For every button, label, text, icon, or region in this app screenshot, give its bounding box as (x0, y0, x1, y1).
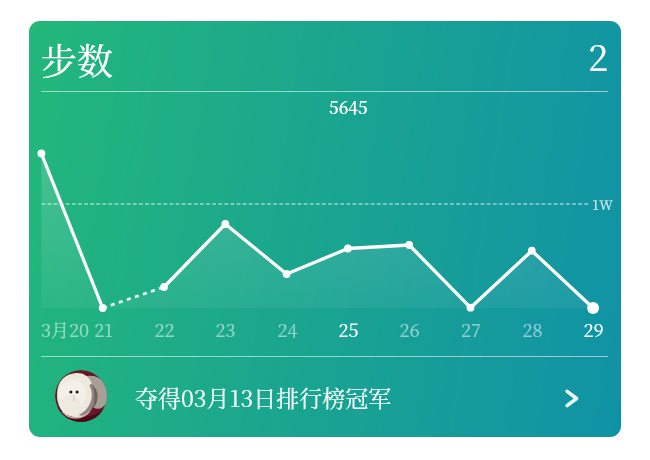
staticText: 22 (154, 316, 175, 342)
staticText: 3月20 (41, 316, 90, 342)
staticText: 26 (399, 316, 420, 342)
staticText: 2 (41, 30, 608, 82)
staticText: 5645 (329, 94, 368, 118)
staticText: 28 (522, 316, 543, 342)
staticText: 1W (592, 195, 613, 214)
staticText: 27 (461, 316, 481, 342)
button[interactable]: 夺得03月13日排行榜冠军 (29, 357, 621, 437)
staticText: 21 (94, 316, 113, 342)
staticText: 夺得03月13日排行榜冠军 (135, 381, 392, 414)
other: 查看详情 (548, 376, 592, 420)
staticText: 25 (338, 316, 359, 342)
staticText: 29 (583, 316, 604, 342)
staticText: 步数 (41, 34, 114, 86)
staticText: 23 (215, 316, 236, 342)
staticText: 24 (277, 316, 298, 342)
